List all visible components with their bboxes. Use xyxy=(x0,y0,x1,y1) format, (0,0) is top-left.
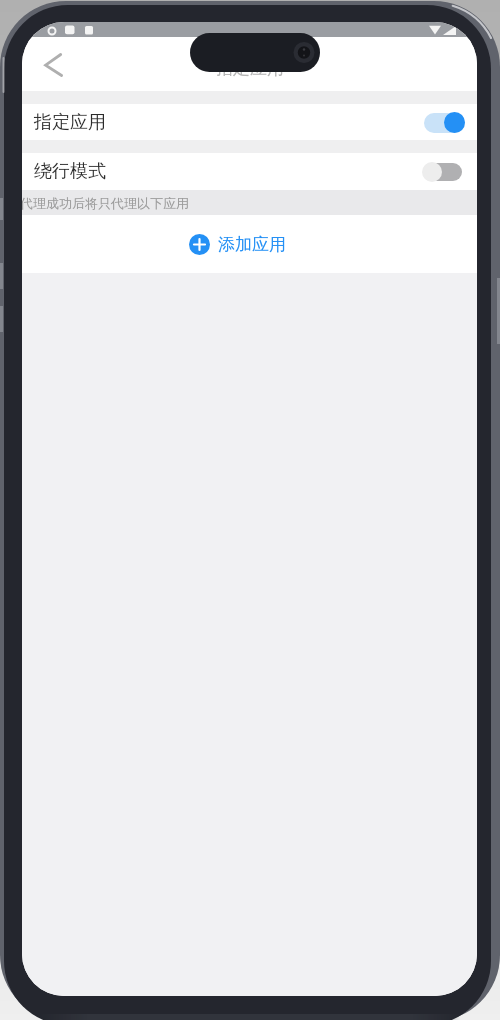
staticText: 指定应用 xyxy=(216,58,284,79)
staticText: 添加应用 xyxy=(218,234,286,255)
staticText: 指定应用 xyxy=(34,111,106,134)
button[interactable] xyxy=(422,162,462,182)
button[interactable]: 添加应用 xyxy=(22,215,477,273)
staticText: 绕行模式 xyxy=(34,160,106,183)
button[interactable] xyxy=(424,112,465,133)
button[interactable]: 绕行模式 xyxy=(22,153,477,190)
staticText: 代理成功后将只代理以下应用 xyxy=(22,195,189,211)
button[interactable]: 指定应用 xyxy=(22,104,477,140)
button[interactable] xyxy=(45,54,62,76)
